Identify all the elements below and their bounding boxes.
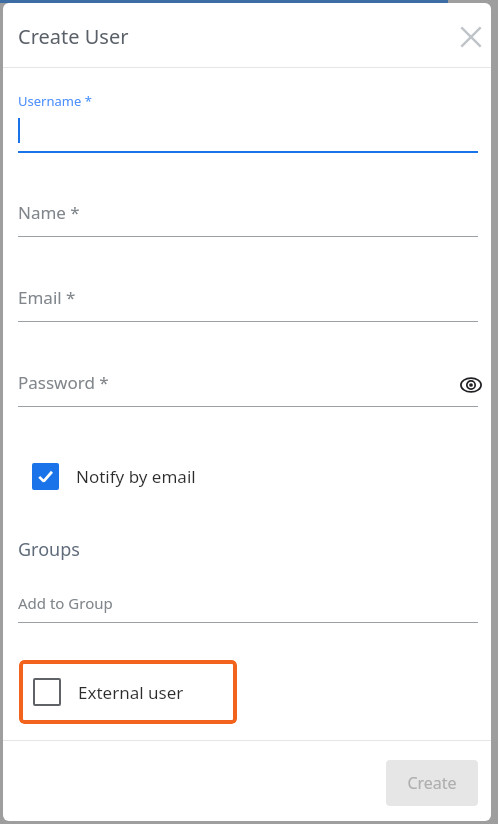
- button[interactable]: Close: [451, 17, 491, 57]
- staticText: Password *: [18, 371, 109, 394]
- staticText: Email *: [18, 286, 76, 309]
- staticText: Create User: [18, 23, 129, 50]
- staticText: External user: [78, 681, 184, 704]
- button[interactable]: External user: [19, 660, 237, 724]
- button[interactable]: Notify by email: [32, 455, 196, 497]
- staticText: Add to Group: [18, 593, 113, 613]
- button[interactable]: Show password: [453, 367, 489, 403]
- button[interactable]: Create: [386, 760, 478, 806]
- staticText: Create: [407, 772, 457, 794]
- staticText: Groups: [18, 537, 80, 562]
- staticText: Name *: [18, 201, 80, 224]
- staticText: Username *: [18, 92, 92, 110]
- staticText: Notify by email: [76, 465, 196, 488]
